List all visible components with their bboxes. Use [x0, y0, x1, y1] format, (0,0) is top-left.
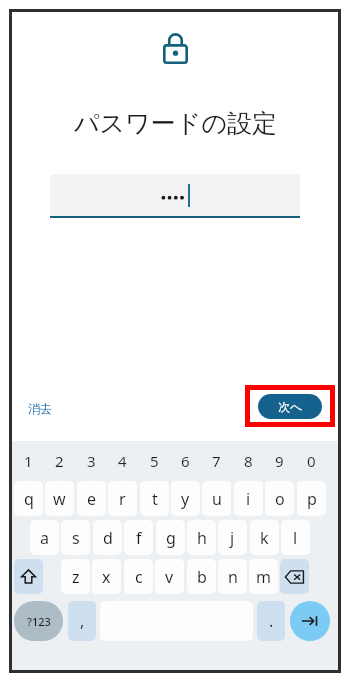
staticText: 6	[181, 451, 190, 471]
button[interactable]: n	[218, 559, 247, 594]
button[interactable]: m	[249, 559, 278, 594]
button[interactable]: k	[250, 520, 279, 555]
staticText: 8	[244, 451, 253, 471]
button[interactable]: 9	[266, 447, 293, 474]
staticText: x	[102, 566, 111, 588]
button[interactable]: 7	[203, 447, 230, 474]
button[interactable]: 5	[141, 447, 168, 474]
button[interactable]: b	[187, 559, 216, 594]
staticText: 3	[87, 451, 96, 471]
staticText: .	[269, 610, 274, 632]
staticText: 4	[118, 451, 127, 471]
staticText: 消去	[28, 401, 52, 416]
staticText: 1	[24, 451, 33, 471]
staticText: b	[197, 566, 207, 588]
button[interactable]: t	[140, 481, 169, 516]
staticText: 7	[212, 451, 221, 471]
button[interactable]: j	[218, 520, 247, 555]
staticText: w	[53, 488, 66, 510]
staticText: パスワードの設定	[74, 108, 277, 139]
staticText: k	[260, 527, 269, 549]
staticText: m	[256, 566, 271, 588]
staticText: a	[40, 527, 49, 549]
staticText: j	[230, 527, 235, 549]
button[interactable]: q	[14, 481, 43, 516]
staticText: ,	[80, 610, 85, 632]
button[interactable]: z	[61, 559, 90, 594]
staticText: h	[197, 527, 207, 549]
staticText: l	[293, 527, 298, 549]
staticText: g	[166, 527, 176, 549]
button[interactable]: Enter	[290, 601, 330, 641]
button[interactable]: 6	[172, 447, 199, 474]
staticText: d	[103, 527, 113, 549]
button[interactable]: a	[30, 520, 59, 555]
button[interactable]: i	[234, 481, 263, 516]
button[interactable]: g	[156, 520, 185, 555]
staticText: y	[181, 488, 190, 510]
staticText: s	[72, 527, 80, 549]
button[interactable]: 2	[46, 447, 73, 474]
staticText: 9	[275, 451, 284, 471]
staticText: u	[212, 488, 222, 510]
button[interactable]: 3	[78, 447, 105, 474]
button[interactable]: x	[92, 559, 121, 594]
button[interactable]: w	[45, 481, 74, 516]
button[interactable]: 次へ	[258, 394, 322, 419]
button[interactable]: d	[93, 520, 122, 555]
button[interactable]: f	[124, 520, 153, 555]
button[interactable]: 8	[235, 447, 262, 474]
button[interactable]: e	[77, 481, 106, 516]
staticText: i	[246, 488, 251, 510]
button[interactable]: l	[281, 520, 310, 555]
button[interactable]: y	[171, 481, 200, 516]
staticText: z	[72, 566, 80, 588]
staticText: t	[152, 488, 158, 510]
button[interactable]: 4	[109, 447, 136, 474]
button[interactable]: c	[124, 559, 153, 594]
button[interactable]: p	[297, 481, 326, 516]
button[interactable]: 消去	[22, 393, 72, 423]
button[interactable]: h	[187, 520, 216, 555]
button[interactable]: ?123	[14, 601, 63, 641]
staticText: p	[307, 488, 317, 510]
staticText: q	[24, 488, 34, 510]
button[interactable]: Backspace	[280, 559, 309, 594]
button[interactable]: Shift	[14, 559, 43, 594]
staticText: c	[135, 566, 143, 588]
staticText: f	[136, 527, 142, 549]
button[interactable]: .	[257, 601, 285, 641]
staticText: 0	[307, 451, 316, 471]
button[interactable]: o	[265, 481, 294, 516]
staticText: n	[228, 566, 238, 588]
staticText: 5	[150, 451, 159, 471]
staticText: v	[165, 566, 174, 588]
staticText: e	[87, 488, 97, 510]
button[interactable]: 1	[15, 447, 42, 474]
button[interactable]: 0	[298, 447, 325, 474]
button[interactable]	[50, 174, 300, 216]
staticText: ?123	[27, 614, 51, 629]
button[interactable]: r	[108, 481, 137, 516]
staticText: 2	[55, 451, 64, 471]
button[interactable]: s	[61, 520, 90, 555]
button[interactable]: ,	[68, 601, 96, 641]
staticText: o	[275, 488, 285, 510]
button[interactable]: v	[155, 559, 184, 594]
button[interactable]: u	[202, 481, 231, 516]
staticText: 次へ	[278, 399, 303, 414]
staticText: r	[119, 488, 126, 510]
